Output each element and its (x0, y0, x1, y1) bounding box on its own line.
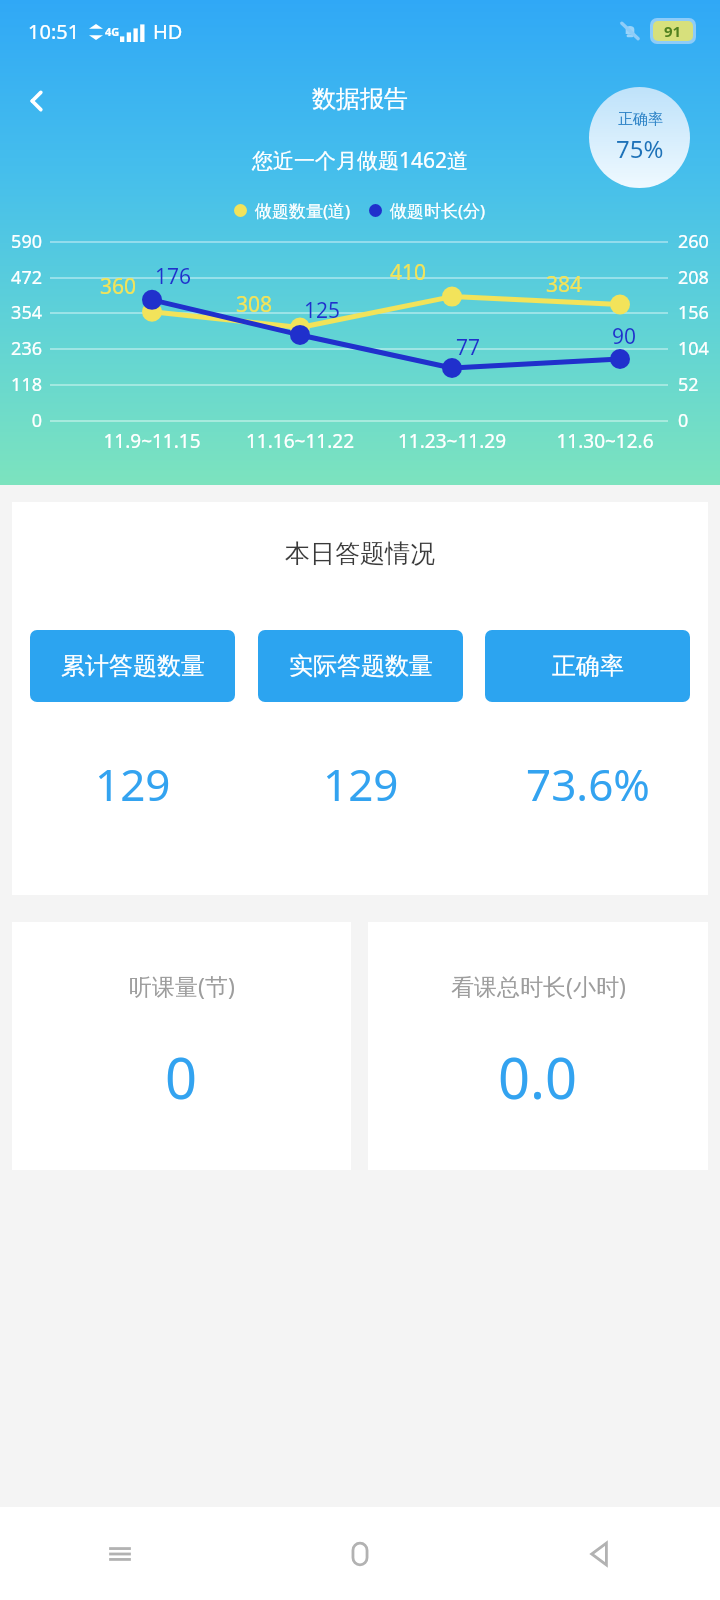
staticText: 正确率 (552, 651, 624, 681)
staticText: 0 (0, 408, 42, 433)
button[interactable]: 正确率 (485, 630, 690, 702)
button[interactable]: 听课量(节) (12, 922, 351, 1170)
staticText: 0.0 (498, 1039, 578, 1115)
staticText: 4G (105, 24, 120, 39)
button[interactable]: 看课总时长(小时) (368, 922, 708, 1170)
staticText: 384 (546, 270, 583, 299)
staticText: 11.30~12.6 (530, 428, 680, 454)
staticText: 11.23~11.29 (377, 428, 527, 454)
staticText: 听课量(节) (129, 970, 235, 1001)
staticText: 本日答题情况 (12, 538, 708, 569)
staticText: 129 (95, 754, 171, 814)
staticText: 236 (0, 336, 42, 361)
staticText: 90 (612, 322, 637, 351)
staticText: 176 (155, 262, 192, 291)
staticText: 156 (678, 300, 709, 325)
staticText: 做题数量(道) (255, 199, 351, 222)
button[interactable]: Home (240, 1507, 480, 1600)
staticText: 104 (678, 336, 709, 361)
staticText: 看课总时长(小时) (451, 970, 626, 1001)
staticText: 10:51 (28, 18, 80, 45)
staticText: 590 (0, 229, 42, 254)
button[interactable]: 正确率 (589, 87, 690, 188)
staticText: 52 (678, 372, 699, 397)
button[interactable]: Back (14, 78, 60, 124)
staticText: 129 (323, 754, 399, 814)
staticText: 260 (678, 229, 709, 254)
staticText: 实际答题数量 (289, 651, 433, 681)
staticText: 73.6% (526, 754, 650, 814)
staticText: HD (153, 18, 183, 45)
button[interactable]: Recents (0, 1507, 240, 1600)
staticText: 125 (304, 296, 341, 325)
staticText: 308 (236, 290, 273, 319)
staticText: 做题时长(分) (390, 199, 486, 222)
button[interactable]: 实际答题数量 (258, 630, 463, 702)
staticText: 354 (0, 300, 42, 325)
staticText: 77 (456, 333, 481, 362)
staticText: 208 (678, 265, 709, 290)
staticText: 75% (616, 132, 664, 165)
staticText: 91 (664, 21, 682, 41)
staticText: 11.16~11.22 (225, 428, 375, 454)
staticText: 您近一个月做题1462道 (0, 146, 720, 175)
staticText: 410 (390, 258, 427, 287)
staticText: 360 (100, 272, 137, 301)
staticText: 数据报告 (0, 84, 720, 114)
button[interactable]: 累计答题数量 (30, 630, 235, 702)
staticText: 0 (165, 1039, 198, 1115)
staticText: 正确率 (618, 110, 663, 129)
button[interactable]: Back (480, 1507, 720, 1600)
staticText: 累计答题数量 (61, 651, 205, 681)
staticText: 0 (678, 408, 689, 433)
staticText: 472 (0, 265, 42, 290)
staticText: 118 (0, 372, 42, 397)
staticText: 11.9~11.15 (77, 428, 227, 454)
